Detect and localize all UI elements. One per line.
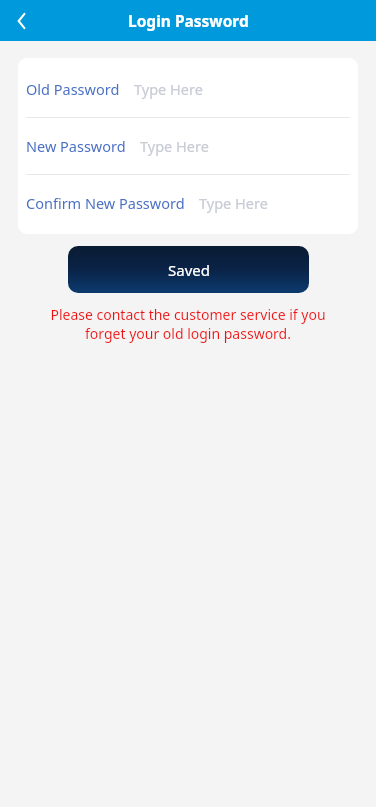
staticText: Confirm New Password — [26, 193, 185, 213]
staticText: Saved — [168, 260, 210, 280]
staticText: Type Here — [199, 193, 350, 213]
staticText: New Password — [26, 136, 126, 156]
button[interactable]: Old Password — [18, 61, 358, 117]
button[interactable]: Confirm New Password — [18, 175, 358, 231]
staticText: Please contact the customer service if y… — [32, 305, 344, 343]
staticText: Type Here — [134, 79, 350, 99]
button[interactable]: Saved — [68, 246, 309, 293]
button[interactable]: Back — [6, 4, 40, 38]
staticText: Login Password — [128, 10, 249, 31]
button[interactable]: New Password — [18, 118, 358, 174]
staticText: Old Password — [26, 79, 120, 99]
staticText: Type Here — [140, 136, 350, 156]
